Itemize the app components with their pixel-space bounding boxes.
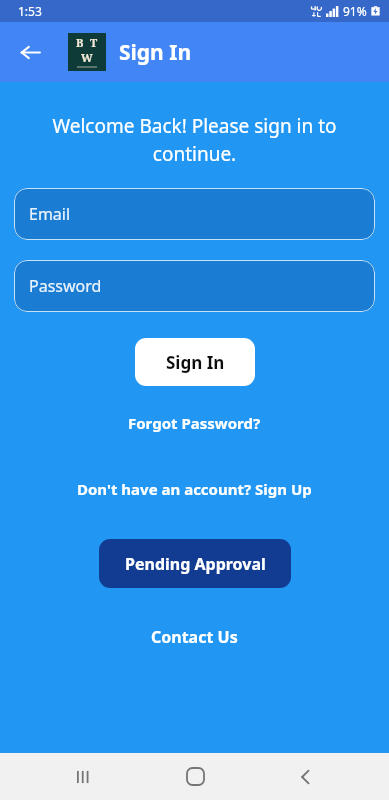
button[interactable]: Recent apps bbox=[55, 753, 111, 800]
staticText: B bbox=[76, 35, 84, 50]
staticText: Pending Approval bbox=[125, 553, 266, 575]
button[interactable]: Home bbox=[167, 753, 223, 800]
staticText: Sign In bbox=[166, 351, 225, 374]
button[interactable]: Password bbox=[14, 260, 375, 312]
staticText: 1:53 bbox=[18, 3, 42, 19]
staticText: Forgot Password? bbox=[128, 413, 261, 433]
staticText: Don't have an account? Sign Up bbox=[77, 479, 312, 499]
staticText: 91% bbox=[343, 3, 367, 19]
button[interactable]: Email bbox=[14, 188, 375, 240]
staticText: Welcome Back! Please sign in to continue… bbox=[30, 113, 359, 167]
button[interactable]: Sign In bbox=[135, 338, 255, 386]
button[interactable]: Contact Us bbox=[143, 622, 246, 652]
staticText: Password bbox=[29, 275, 102, 297]
button[interactable]: Forgot Password? bbox=[120, 409, 269, 437]
button[interactable]: Back bbox=[10, 32, 50, 72]
staticText: W bbox=[81, 50, 93, 65]
staticText: Contact Us bbox=[151, 626, 238, 648]
staticText: Email bbox=[29, 203, 71, 225]
staticText: T bbox=[90, 35, 98, 50]
button[interactable]: Don't have an account? Sign Up bbox=[69, 475, 320, 503]
button[interactable]: Back bbox=[278, 753, 334, 800]
button[interactable]: Pending Approval bbox=[99, 539, 291, 588]
staticText: Sign In bbox=[119, 38, 192, 67]
